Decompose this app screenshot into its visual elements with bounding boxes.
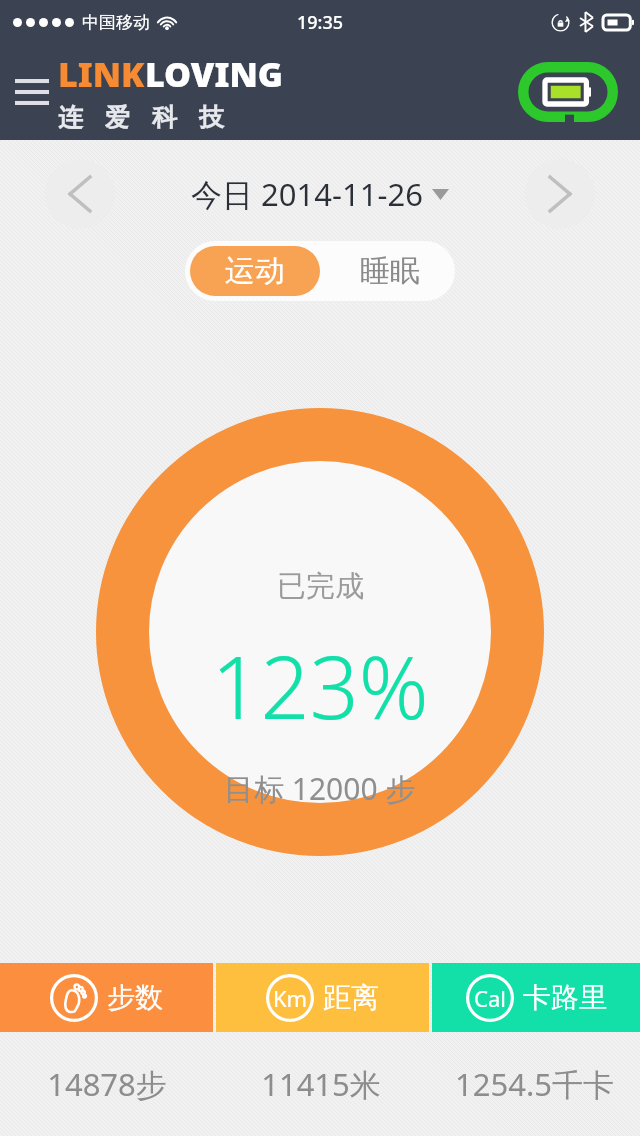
staticText: 目标 12000 步 xyxy=(224,768,416,809)
staticText: LOVING xyxy=(145,51,283,97)
button[interactable]: Menu xyxy=(6,66,58,118)
staticText: Km xyxy=(273,983,308,1013)
staticText: 距离 xyxy=(323,980,379,1015)
staticText: 连 爱 科 技 xyxy=(58,99,228,133)
button[interactable]: Cal xyxy=(432,963,640,1032)
button[interactable]: Previous day xyxy=(45,159,115,229)
staticText: 步数 xyxy=(107,980,163,1015)
button[interactable]: 睡眠 xyxy=(325,241,455,301)
staticText: Cal xyxy=(474,983,506,1013)
staticText: 卡路里 xyxy=(523,980,607,1015)
staticText: 1254.5千卡 xyxy=(455,1063,614,1105)
button[interactable]: 运动 xyxy=(190,246,320,296)
staticText: 已完成 xyxy=(277,568,364,605)
staticText: 123% xyxy=(211,627,429,744)
staticText: 今日 2014-11-26 xyxy=(191,173,423,215)
button[interactable]: 步数 xyxy=(0,963,213,1032)
button[interactable]: Km xyxy=(216,963,429,1032)
staticText: 中国移动 xyxy=(82,12,150,33)
button[interactable]: Device battery xyxy=(518,62,618,122)
staticText: 14878步 xyxy=(47,1063,167,1105)
staticText: 19:35 xyxy=(297,10,344,35)
staticText: 睡眠 xyxy=(360,252,420,290)
button[interactable]: Next day xyxy=(525,159,595,229)
staticText: 运动 xyxy=(225,252,285,290)
staticText: 11415米 xyxy=(261,1063,381,1105)
staticText: LINK xyxy=(58,51,145,97)
button[interactable]: 今日 2014-11-26 xyxy=(191,173,449,215)
